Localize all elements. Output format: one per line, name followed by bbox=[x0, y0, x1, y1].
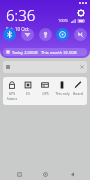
staticText: ES bbox=[26, 91, 30, 96]
button[interactable]: Mobile data bbox=[56, 28, 69, 41]
button[interactable]: Home bbox=[37, 168, 53, 180]
button[interactable]: This only bbox=[54, 80, 70, 97]
button[interactable]: Wi-Fi bbox=[21, 28, 34, 41]
button[interactable]: Board bbox=[70, 80, 86, 97]
button[interactable]: Recents bbox=[11, 168, 27, 180]
staticText: Board bbox=[73, 91, 83, 96]
staticText: GPS bbox=[42, 91, 49, 96]
staticText: 6:36 bbox=[6, 5, 36, 25]
button[interactable]: Flashlight bbox=[39, 28, 52, 41]
button[interactable]: Search bbox=[3, 61, 87, 73]
button[interactable]: Settings bbox=[76, 8, 85, 17]
button[interactable]: Bluetooth bbox=[3, 28, 16, 41]
staticText: 100% bbox=[58, 18, 69, 23]
button[interactable]: Back bbox=[64, 168, 80, 180]
staticText: Today 2.00GB bbox=[12, 50, 38, 55]
staticText: Sat, 10 Oct bbox=[6, 26, 29, 32]
button[interactable]: GPS bbox=[37, 80, 53, 97]
button[interactable]: Today 2.00GB bbox=[3, 48, 87, 56]
staticText: This month 32.0GB bbox=[41, 50, 77, 55]
staticText: This only bbox=[55, 91, 70, 96]
button[interactable]: Do not disturb bbox=[74, 28, 87, 41]
staticText: GPS Status bbox=[4, 91, 20, 101]
button[interactable]: GPS Status bbox=[4, 80, 20, 102]
button[interactable]: ES bbox=[20, 80, 36, 97]
